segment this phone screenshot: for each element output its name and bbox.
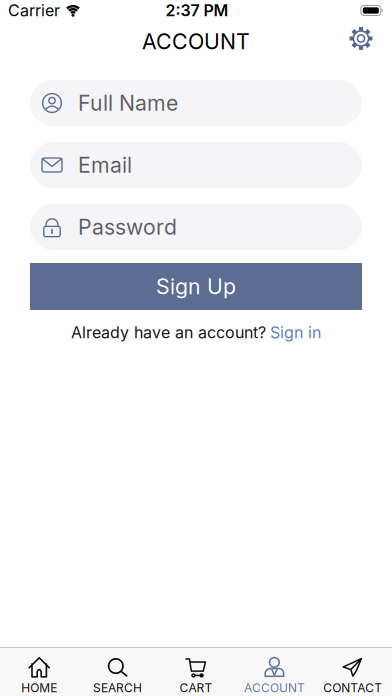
staticText: Email bbox=[78, 152, 132, 178]
button[interactable]: Sign Up bbox=[30, 263, 362, 310]
button[interactable]: CONTACT bbox=[314, 658, 392, 695]
staticText: ACCOUNT bbox=[142, 29, 250, 54]
staticText: CONTACT bbox=[323, 681, 382, 695]
staticText: Carrier bbox=[8, 1, 60, 20]
staticText: ACCOUNT bbox=[244, 681, 305, 695]
button[interactable]: HOME bbox=[0, 658, 78, 695]
staticText: CART bbox=[179, 681, 212, 695]
button[interactable]: Sign in bbox=[270, 323, 321, 342]
button[interactable]: SEARCH bbox=[78, 658, 157, 695]
staticText: Sign Up bbox=[156, 274, 236, 299]
staticText: 2:37 PM bbox=[165, 1, 228, 20]
staticText: Password bbox=[78, 214, 177, 240]
button[interactable]: Email bbox=[30, 142, 362, 188]
staticText: HOME bbox=[21, 681, 57, 695]
button[interactable]: CART bbox=[157, 658, 235, 695]
staticText: SEARCH bbox=[93, 681, 142, 695]
staticText: Already have an account? bbox=[71, 323, 266, 342]
button[interactable]: ACCOUNT bbox=[235, 658, 314, 695]
staticText: Full Name bbox=[78, 90, 178, 116]
button[interactable]: Settings bbox=[349, 26, 373, 50]
button[interactable]: Password bbox=[30, 204, 362, 250]
staticText: Sign in bbox=[270, 323, 321, 342]
button[interactable]: Full Name bbox=[30, 80, 362, 126]
